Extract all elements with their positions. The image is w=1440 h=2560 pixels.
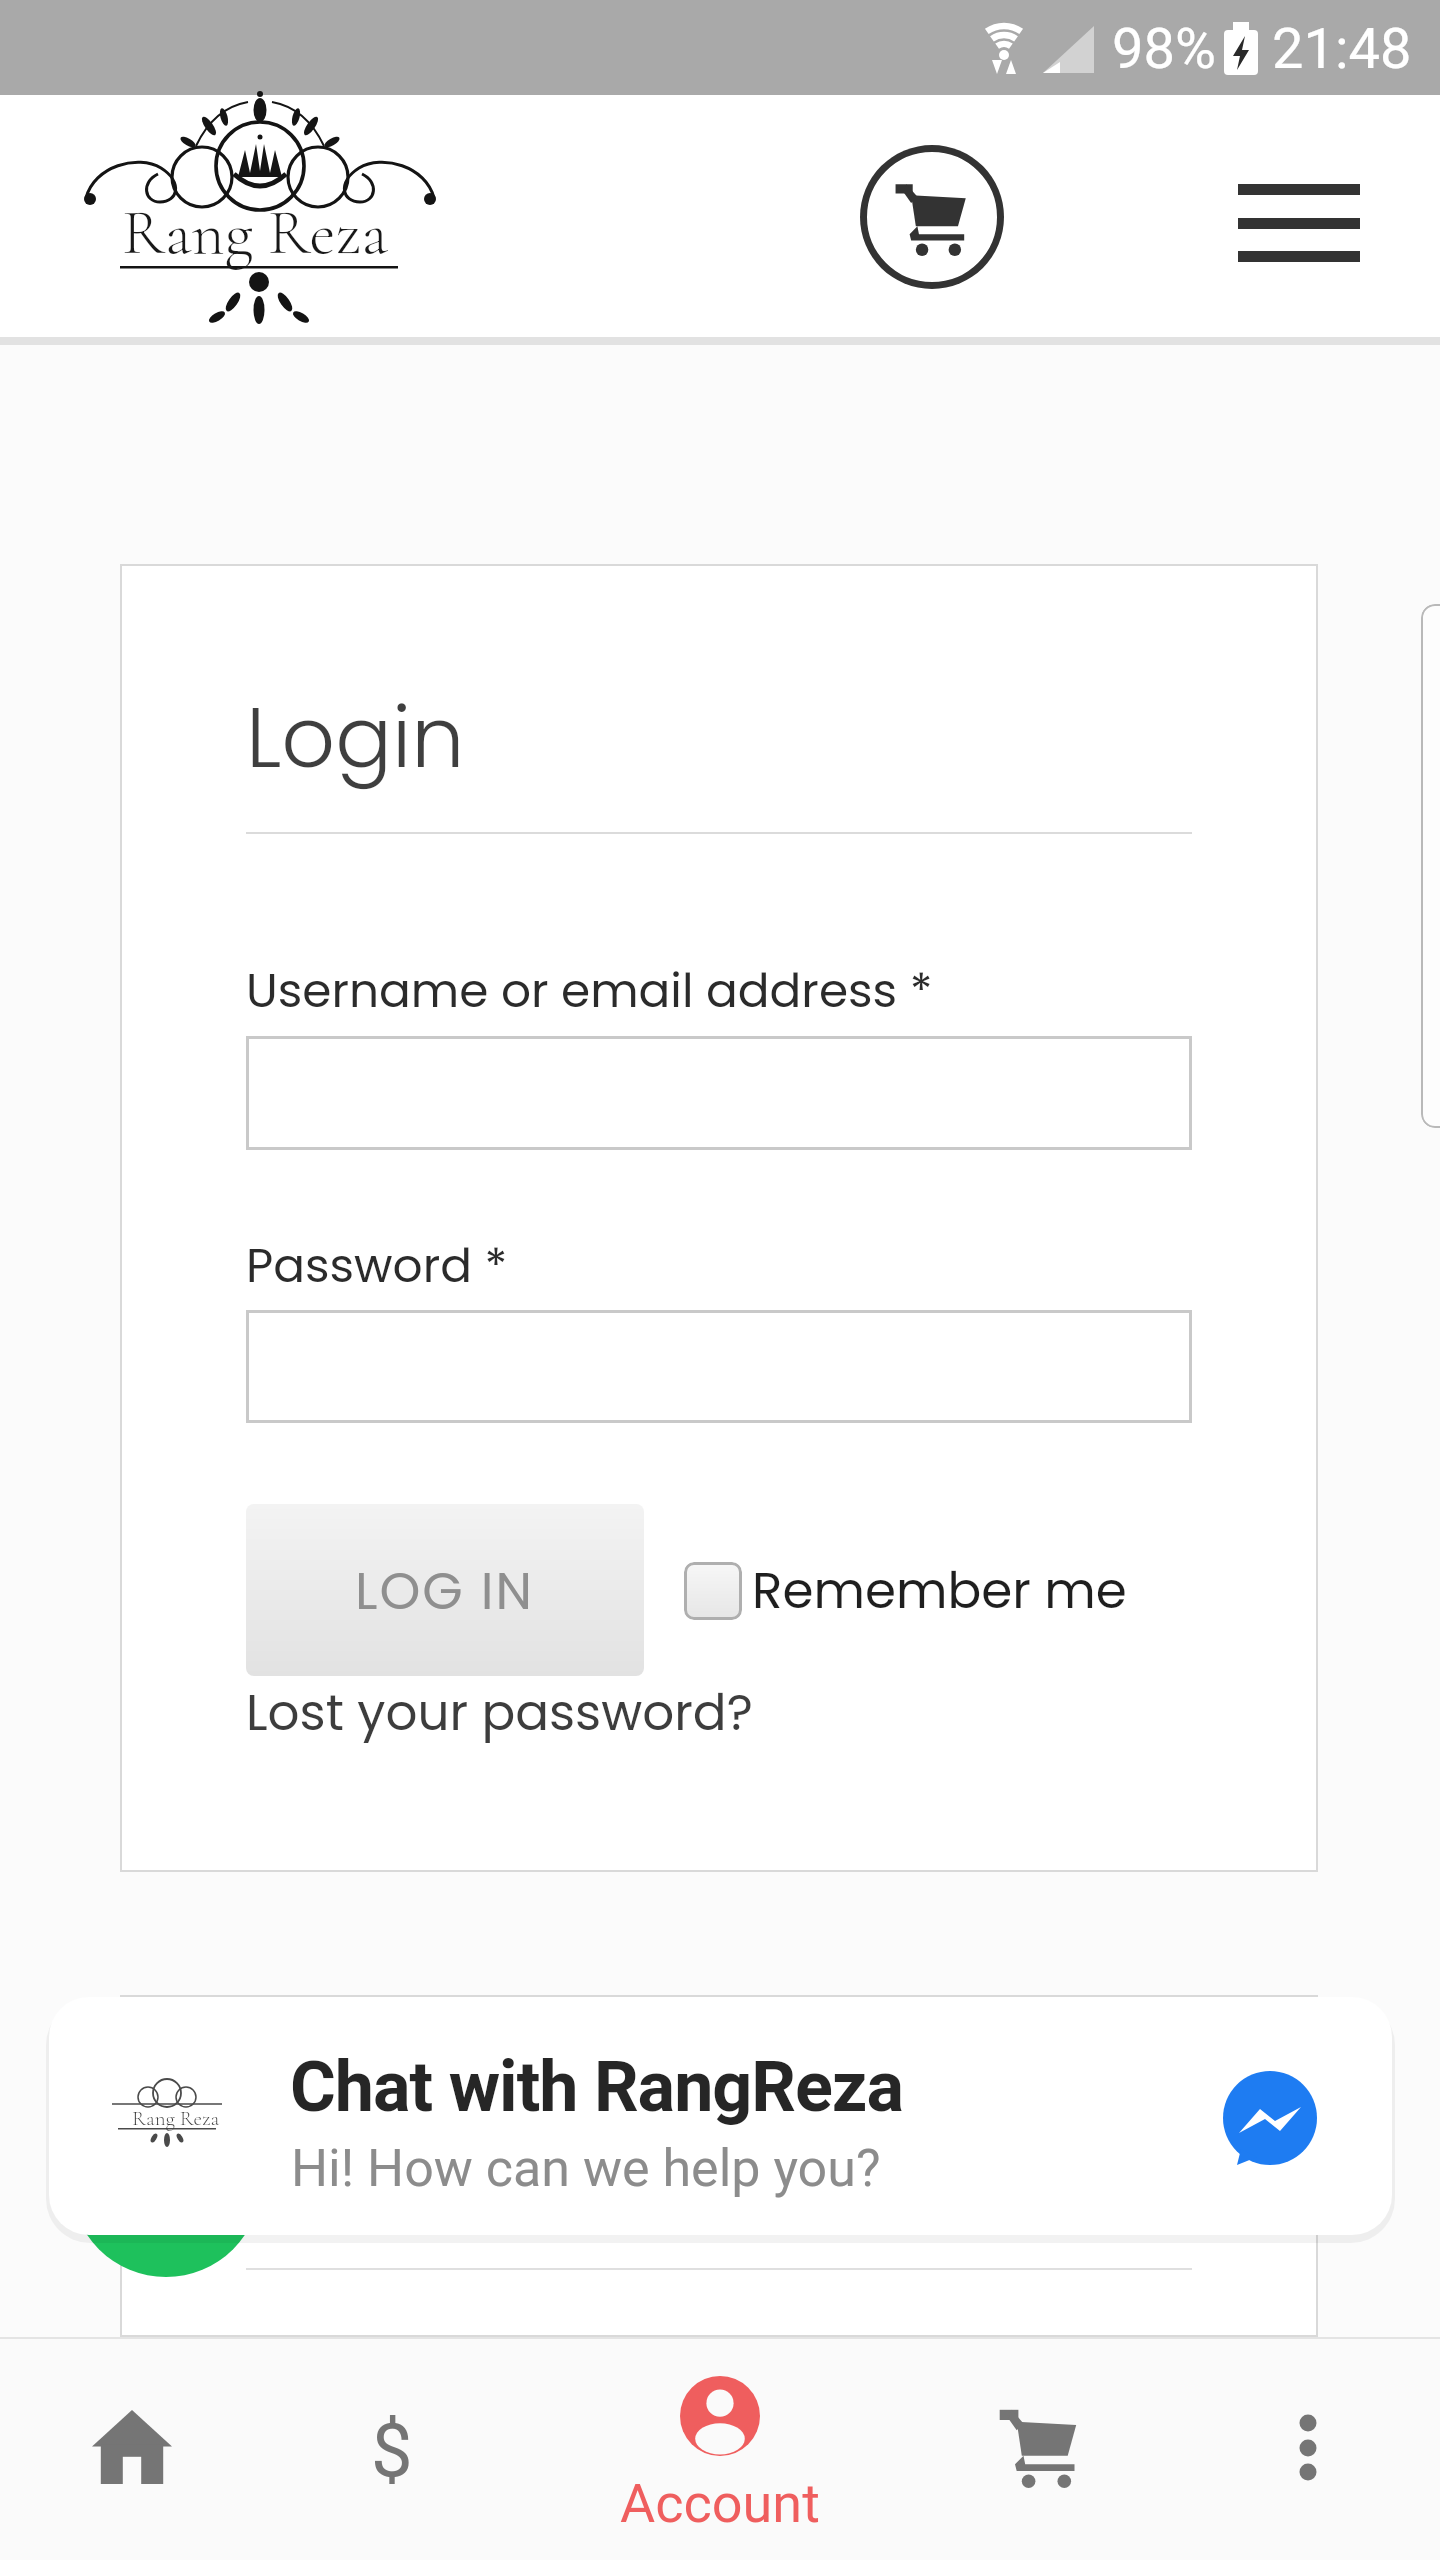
button[interactable]: $: [330, 2380, 454, 2520]
staticText: Login: [246, 679, 465, 797]
staticText: $: [371, 2407, 413, 2494]
staticText: Account: [620, 2472, 820, 2532]
button[interactable]: [60, 2380, 204, 2520]
staticText: 21:48: [1272, 16, 1412, 82]
button[interactable]: [980, 2385, 1100, 2515]
button[interactable]: [684, 1562, 742, 1620]
staticText: Remember me: [752, 1556, 1127, 1626]
button[interactable]: [860, 145, 1004, 289]
button[interactable]: [49, 1997, 1392, 2235]
button[interactable]: Lost your password?: [246, 1678, 753, 1748]
staticText: Chat with RangReza: [290, 2046, 904, 2128]
button[interactable]: [246, 1036, 1192, 1150]
staticText: Rang Reza: [122, 194, 389, 272]
staticText: 98%: [1112, 16, 1216, 82]
button[interactable]: [1238, 170, 1360, 274]
button[interactable]: LOG IN: [246, 1504, 644, 1676]
button[interactable]: [1223, 2071, 1317, 2165]
staticText: Rang Reza: [132, 2106, 220, 2131]
staticText: Lost your password?: [246, 1678, 753, 1748]
button[interactable]: Account: [620, 2360, 820, 2540]
staticText: Password *: [246, 1233, 508, 1299]
button[interactable]: [246, 1310, 1192, 1423]
button[interactable]: [80, 100, 436, 332]
staticText: Hi! How can we help you?: [291, 2138, 881, 2199]
staticText: Username or email address *: [246, 958, 933, 1024]
staticText: LOG IN: [355, 1554, 535, 1627]
button[interactable]: [1270, 2380, 1346, 2520]
